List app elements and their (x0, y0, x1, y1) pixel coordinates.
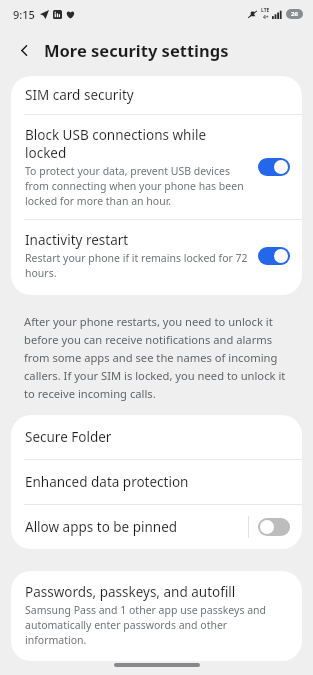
button[interactable]: Block USB connections while locked (11, 115, 302, 219)
staticText: Allow apps to be pinned (25, 518, 248, 536)
button[interactable]: Back (7, 33, 41, 67)
staticText: 4+ (263, 14, 269, 21)
button[interactable]: Toggle off (258, 518, 290, 536)
staticText: To protect your data, prevent USB device… (25, 164, 250, 208)
staticText: LTE (261, 7, 270, 14)
staticText: Samsung Pass and 1 other app use passkey… (25, 603, 288, 647)
button[interactable]: Inactivity restart (11, 220, 302, 291)
staticText: After your phone restarts, you need to u… (24, 314, 291, 401)
staticText: 26 (291, 10, 298, 18)
staticText: Passwords, passkeys, and autofill (25, 583, 236, 601)
button[interactable]: Allow apps to be pinned (11, 505, 302, 549)
staticText: Enhanced data protection (25, 473, 189, 491)
button[interactable]: Toggle on (258, 158, 290, 176)
button[interactable]: Passwords, passkeys, and autofill (11, 571, 302, 661)
staticText: More security settings (44, 39, 229, 61)
staticText: 9:15 (13, 7, 35, 22)
button[interactable]: Toggle on (258, 247, 290, 265)
staticText: SIM card security (25, 86, 134, 104)
staticText: Inactivity restart (25, 231, 129, 249)
staticText: Restart your phone if it remains locked … (25, 251, 250, 280)
button[interactable]: Enhanced data protection (11, 460, 302, 504)
button[interactable]: Secure Folder (11, 415, 302, 459)
staticText: Secure Folder (25, 428, 112, 446)
button[interactable]: SIM card security (11, 76, 302, 114)
staticText: Block USB connections while locked (25, 126, 206, 162)
